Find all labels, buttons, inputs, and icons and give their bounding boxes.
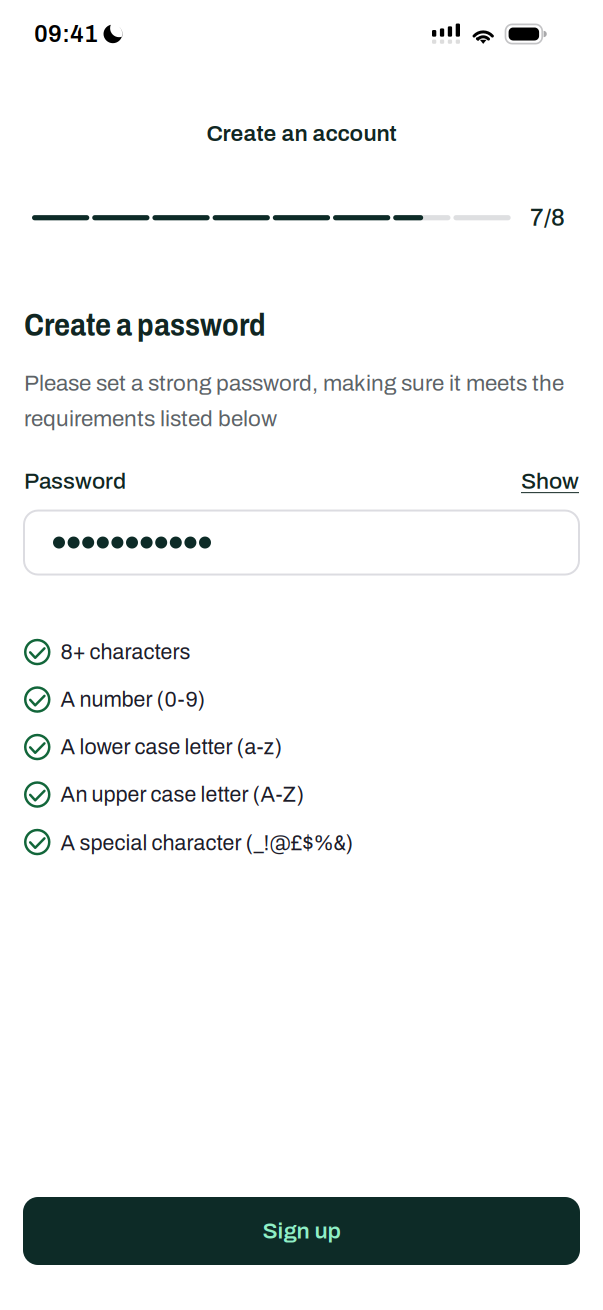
staticText: Please set a strong password, making sur… <box>24 371 564 431</box>
staticText: A special character (_!@£$%&) <box>60 827 353 857</box>
staticText: A lower case letter (a-z) <box>60 735 282 759</box>
staticText: Create a password <box>24 309 266 342</box>
staticText: Password <box>24 469 126 494</box>
button[interactable]: Sign up <box>23 1197 580 1265</box>
staticText: An upper case letter (A-Z) <box>60 783 304 806</box>
staticText: Show <box>521 469 579 494</box>
staticText: 09:41 <box>34 21 98 47</box>
staticText: Create an account <box>206 121 396 146</box>
staticText: A number (0-9) <box>60 688 205 711</box>
button[interactable]: Show <box>521 469 579 494</box>
staticText: 7/8 <box>530 205 565 231</box>
staticText: 8+ characters <box>60 640 190 664</box>
staticText: Sign up <box>262 1219 340 1243</box>
